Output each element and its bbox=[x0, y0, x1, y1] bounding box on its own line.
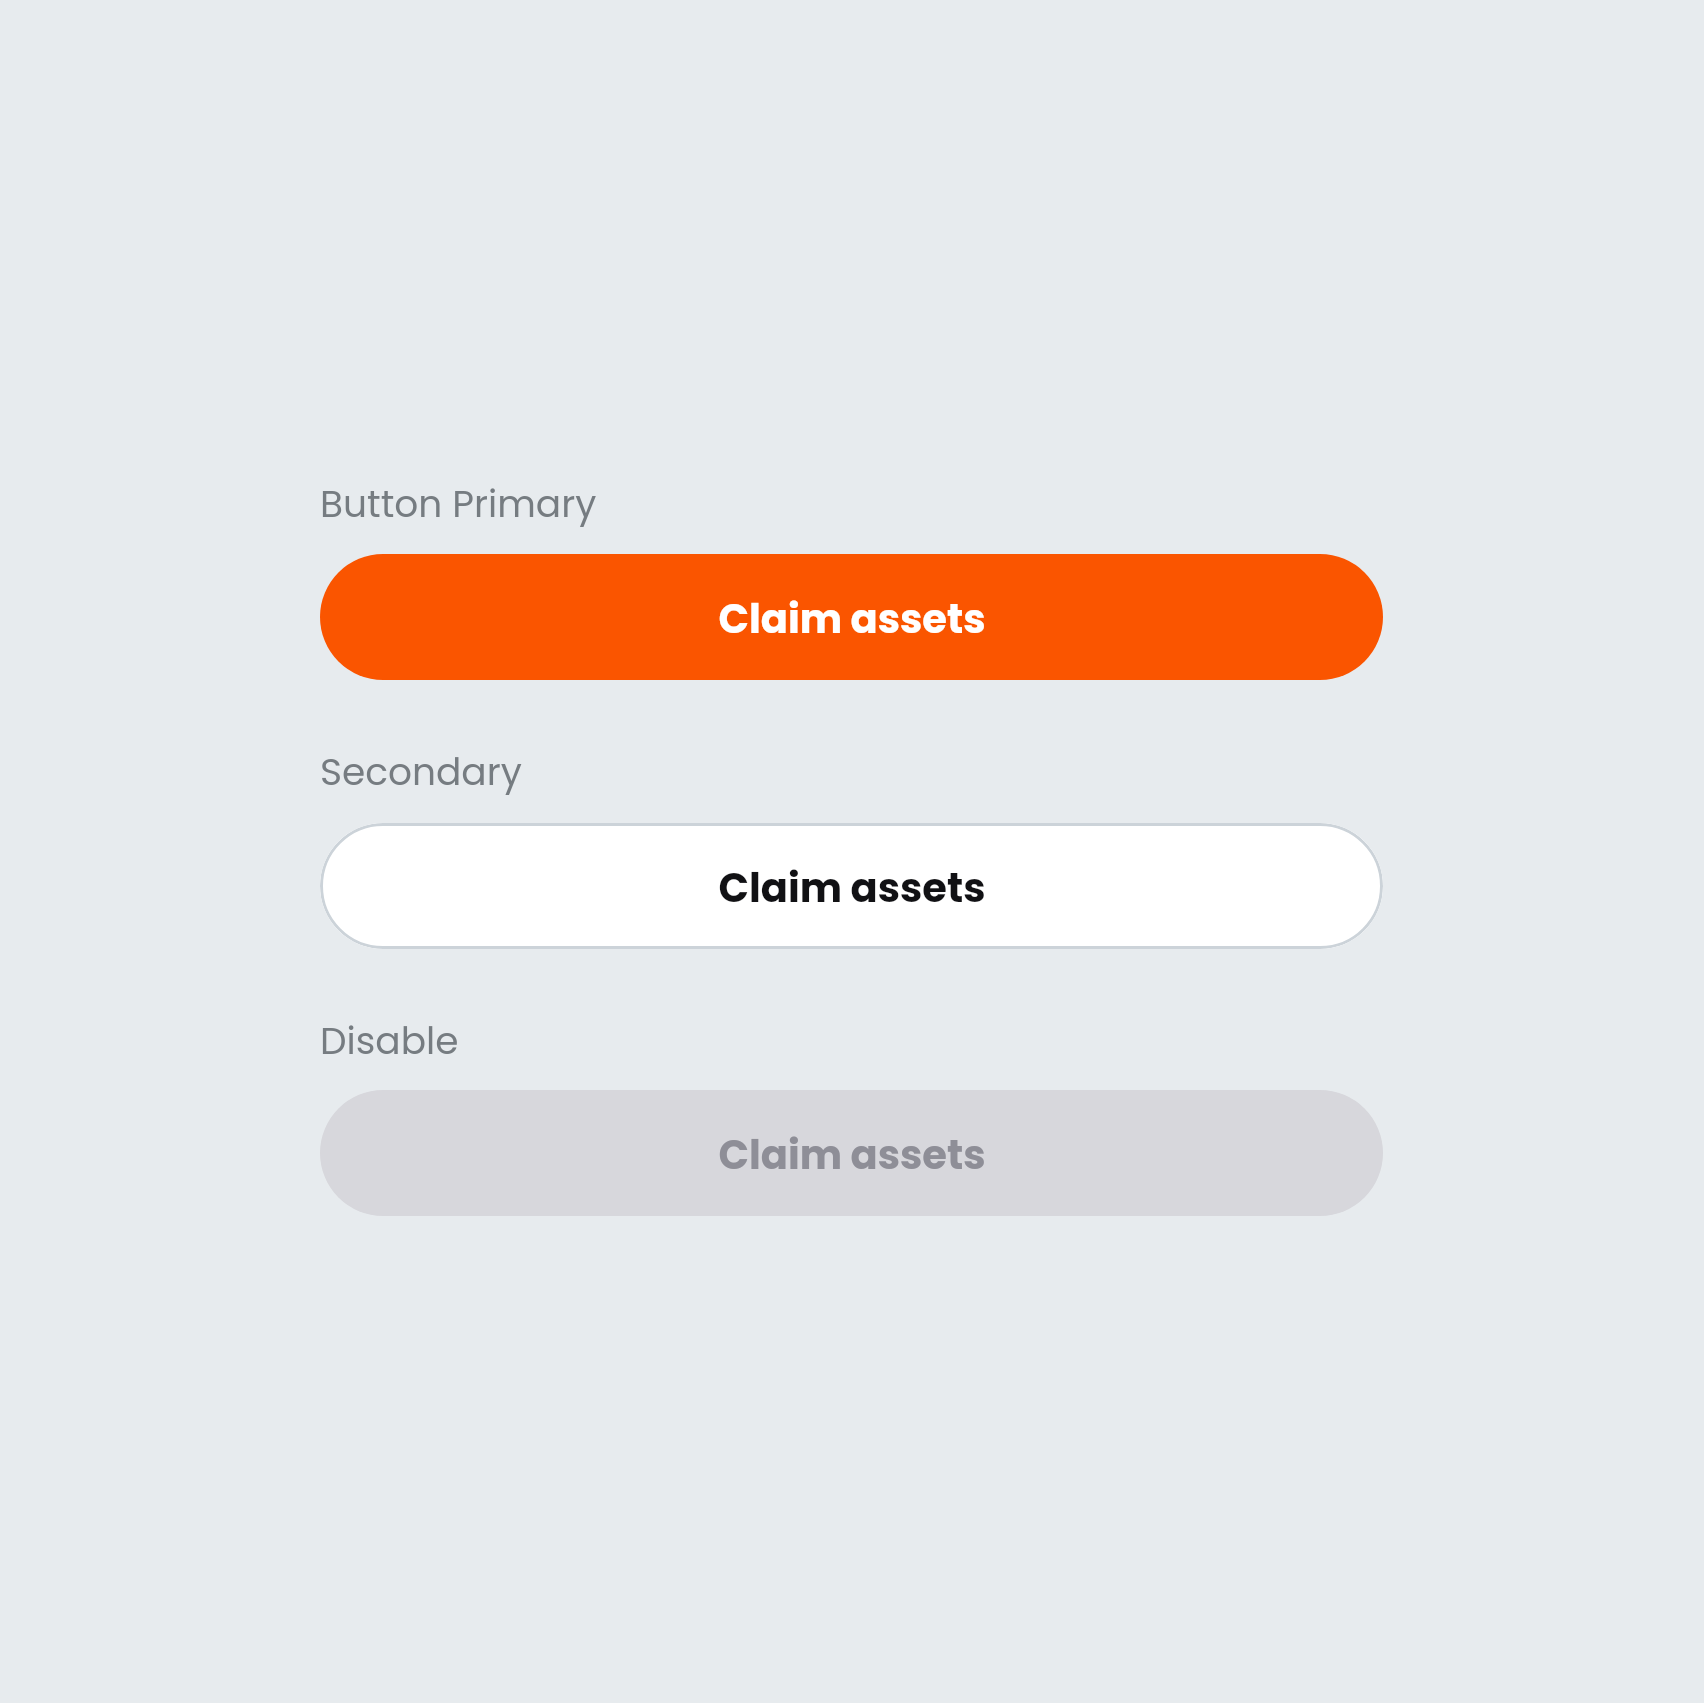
staticText: Claim assets bbox=[718, 860, 986, 916]
staticText: Claim assets bbox=[718, 591, 986, 647]
button[interactable]: Claim assets bbox=[320, 554, 1383, 680]
staticText: Disable bbox=[320, 1015, 459, 1068]
staticText: Button Primary bbox=[320, 478, 597, 531]
staticText: Claim assets bbox=[718, 1127, 986, 1183]
button[interactable]: Claim assets bbox=[320, 823, 1383, 949]
staticText: Secondary bbox=[320, 746, 522, 799]
button[interactable]: Claim assets bbox=[320, 1090, 1383, 1216]
